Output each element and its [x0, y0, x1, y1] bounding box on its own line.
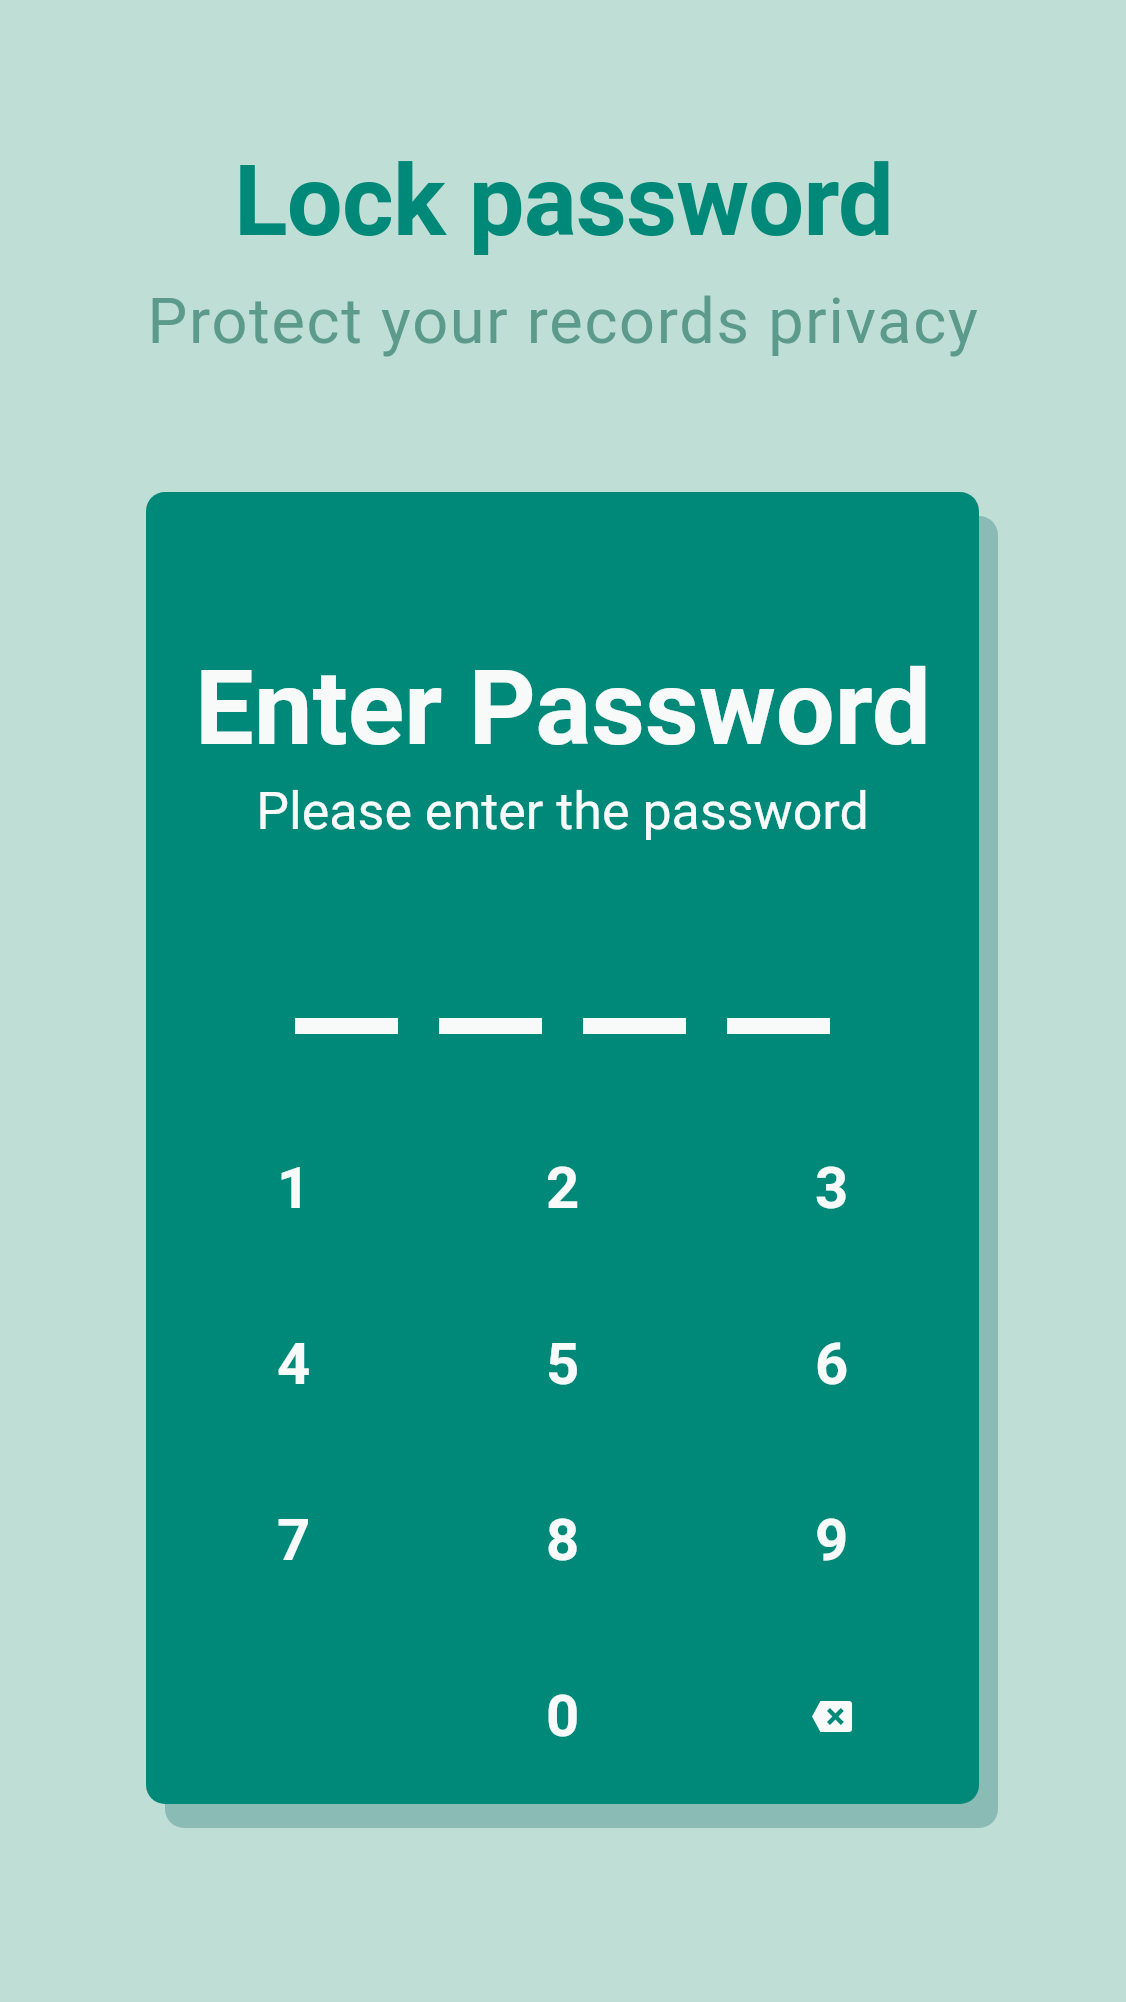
staticText: 3 [815, 1154, 849, 1222]
button[interactable]: Delete [697, 1628, 966, 1804]
staticText: 5 [546, 1330, 580, 1398]
staticText: 4 [277, 1330, 311, 1398]
staticText: 7 [277, 1506, 311, 1574]
button[interactable]: 7 [159, 1452, 428, 1628]
button[interactable]: 4 [159, 1276, 428, 1452]
staticText: Protect your records privacy [147, 285, 980, 359]
button[interactable]: 6 [697, 1276, 966, 1452]
staticText: 1 [277, 1154, 311, 1222]
button[interactable]: 8 [428, 1452, 697, 1628]
staticText: Please enter the password [256, 781, 869, 842]
staticText: Lock password [234, 143, 893, 259]
staticText: Enter Password [195, 647, 931, 769]
staticText: 9 [815, 1506, 849, 1574]
staticText: 0 [546, 1682, 580, 1750]
staticText: 6 [815, 1330, 849, 1398]
button[interactable]: 1 [159, 1100, 428, 1276]
button[interactable]: 9 [697, 1452, 966, 1628]
button[interactable]: 0 [428, 1628, 697, 1804]
button[interactable]: 3 [697, 1100, 966, 1276]
staticText: 8 [546, 1506, 580, 1574]
staticText: 2 [546, 1154, 580, 1222]
button[interactable]: 5 [428, 1276, 697, 1452]
button[interactable]: 2 [428, 1100, 697, 1276]
